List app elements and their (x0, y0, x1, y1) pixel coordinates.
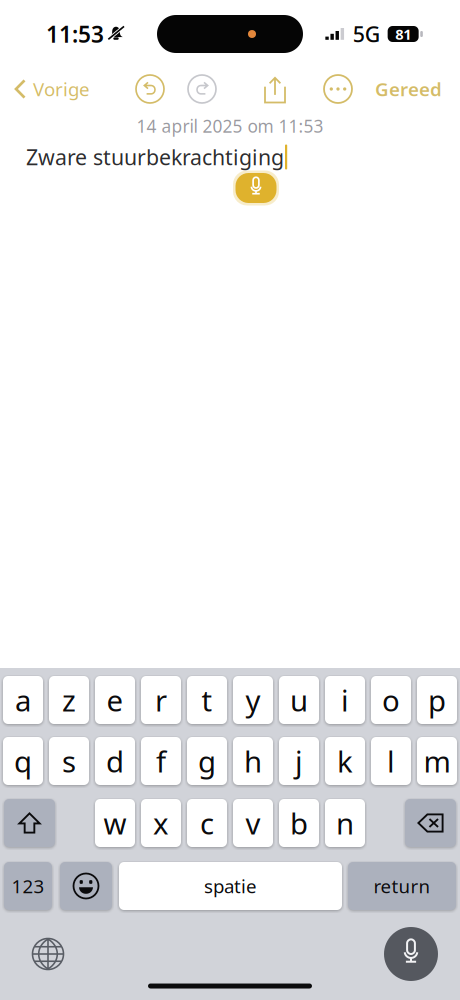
button[interactable]: u (279, 676, 319, 724)
staticText: p (428, 680, 446, 719)
button[interactable]: Emoji keyboard (60, 862, 112, 910)
staticText: b (290, 803, 308, 842)
button[interactable]: return (348, 862, 456, 910)
staticText: 14 april 2025 om 11:53 (136, 114, 323, 137)
button[interactable]: d (95, 737, 135, 785)
staticText: w (103, 803, 126, 842)
staticText: Vorige (33, 77, 90, 101)
staticText: h (244, 741, 262, 780)
button[interactable]: r (141, 676, 181, 724)
staticText: m (423, 741, 450, 780)
button[interactable]: 123 (4, 862, 52, 910)
staticText: u (290, 680, 308, 719)
staticText: o (382, 680, 400, 719)
button[interactable]: Shift (4, 799, 55, 847)
button[interactable]: a (3, 676, 43, 724)
staticText: 11:53 (46, 19, 104, 49)
button[interactable]: spatie (119, 862, 342, 910)
button[interactable]: n (325, 799, 365, 847)
button[interactable]: z (49, 676, 89, 724)
staticText: 5G (353, 20, 381, 48)
button[interactable]: s (49, 737, 89, 785)
button[interactable]: c (187, 799, 227, 847)
button[interactable]: w (95, 799, 135, 847)
button[interactable]: x (141, 799, 181, 847)
staticText: Gereed (375, 77, 442, 101)
staticText: k (337, 741, 353, 780)
button[interactable]: t (187, 676, 227, 724)
button[interactable]: k (325, 737, 365, 785)
staticText: Zware stuurbekrachtiging (26, 143, 284, 171)
staticText: l (387, 741, 395, 780)
staticText: t (201, 680, 212, 719)
staticText: y (245, 680, 260, 719)
button[interactable]: e (95, 676, 135, 724)
button[interactable]: v (233, 799, 273, 847)
staticText: e (106, 680, 123, 719)
button[interactable]: y (233, 676, 273, 724)
button[interactable]: p (417, 676, 457, 724)
button[interactable]: More options (320, 71, 356, 107)
staticText: c (200, 803, 214, 842)
button[interactable]: q (3, 737, 43, 785)
button[interactable]: h (233, 737, 273, 785)
button[interactable]: i (325, 676, 365, 724)
staticText: q (14, 741, 32, 780)
button[interactable]: l (371, 737, 411, 785)
button[interactable]: g (187, 737, 227, 785)
staticText: j (295, 741, 303, 780)
button[interactable]: Redo (184, 71, 220, 107)
button[interactable]: m (417, 737, 457, 785)
staticText: d (106, 741, 124, 780)
button[interactable]: Gereed (367, 72, 450, 106)
staticText: s (62, 741, 76, 780)
button[interactable]: Dictation (231, 169, 281, 207)
staticText: 81 (395, 24, 411, 44)
staticText: n (336, 803, 354, 842)
button[interactable]: Dictation (384, 927, 438, 981)
button[interactable]: Delete (405, 799, 456, 847)
staticText: f (156, 741, 166, 780)
staticText: r (155, 680, 167, 719)
staticText: z (62, 680, 76, 719)
staticText: g (198, 741, 216, 780)
button[interactable]: Share (257, 72, 293, 108)
staticText: a (15, 680, 31, 719)
staticText: v (245, 803, 260, 842)
staticText: spatie (204, 874, 257, 898)
button[interactable]: Vorige (8, 72, 96, 106)
button[interactable]: f (141, 737, 181, 785)
button[interactable]: Undo (132, 71, 168, 107)
staticText: i (341, 680, 349, 719)
button[interactable]: b (279, 799, 319, 847)
staticText: x (153, 803, 169, 842)
button[interactable]: Switch keyboard (26, 932, 70, 976)
staticText: 123 (11, 874, 44, 898)
staticText: return (373, 874, 430, 898)
button[interactable]: o (371, 676, 411, 724)
button[interactable]: j (279, 737, 319, 785)
